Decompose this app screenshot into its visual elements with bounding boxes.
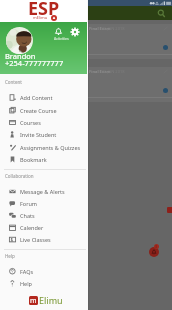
staticText: +254-777777777	[5, 58, 64, 68]
button[interactable]: Invite Student	[0, 128, 87, 140]
button[interactable]: Final Exam	[87, 24, 172, 59]
staticText: Help	[5, 253, 15, 259]
button[interactable]: FAQs	[0, 265, 87, 277]
button[interactable]: Courses	[0, 116, 87, 128]
staticText: Message & Alerts	[20, 188, 65, 195]
staticText: Bookmark	[20, 156, 47, 163]
staticText: Forum	[20, 200, 37, 207]
button[interactable]: Open panel	[167, 207, 172, 213]
staticText: Collaboration	[5, 173, 34, 179]
button[interactable]: Live Classes	[0, 233, 87, 245]
button[interactable]: Forum	[0, 197, 87, 209]
button[interactable]: Help	[0, 277, 87, 289]
staticText: FAQs	[20, 268, 34, 275]
staticText: mElimu	[33, 15, 48, 20]
staticText: Chats	[20, 212, 35, 219]
button[interactable]: Chats	[0, 209, 87, 221]
staticText: Add Content	[20, 94, 53, 101]
button[interactable]: Profile photo	[6, 27, 33, 54]
staticText: Calender	[20, 224, 44, 231]
staticText: Final Exam	[89, 69, 111, 74]
staticText: Brandon	[5, 51, 36, 61]
staticText: Content	[5, 79, 22, 85]
staticText: Courses	[20, 119, 41, 126]
button[interactable]: Calender	[0, 221, 87, 233]
staticText: Live Classes	[20, 236, 51, 243]
button[interactable]: More	[163, 45, 168, 50]
button[interactable]: Assignments & Quizzes	[0, 141, 87, 153]
button[interactable]: More	[163, 88, 168, 93]
button[interactable]: Add Content	[0, 91, 87, 103]
button[interactable]: Bookmark	[0, 153, 87, 165]
staticText: 05 JAN 2018	[102, 26, 125, 31]
button[interactable]: Final Exam	[87, 67, 172, 102]
button[interactable]: Create Course	[0, 104, 87, 116]
button[interactable]: Notifications	[149, 247, 159, 257]
staticText: Activities	[54, 36, 69, 41]
staticText: Final Exam	[89, 26, 111, 31]
staticText: Help	[20, 280, 32, 287]
button[interactable]: Settings	[68, 25, 81, 38]
button[interactable]: Search	[156, 8, 167, 19]
staticText: ESP	[28, 0, 60, 18]
button[interactable]: Activities	[52, 25, 65, 38]
staticText: Invite Student	[20, 131, 57, 138]
staticText: Create Course	[20, 107, 57, 114]
staticText: Elimu	[39, 294, 63, 306]
staticText: m	[30, 296, 37, 305]
staticText: Assignments & Quizzes	[20, 144, 81, 151]
staticText: 3	[155, 244, 158, 249]
staticText: 05 JAN 2018	[102, 69, 125, 74]
button[interactable]: Message & Alerts	[0, 185, 87, 197]
